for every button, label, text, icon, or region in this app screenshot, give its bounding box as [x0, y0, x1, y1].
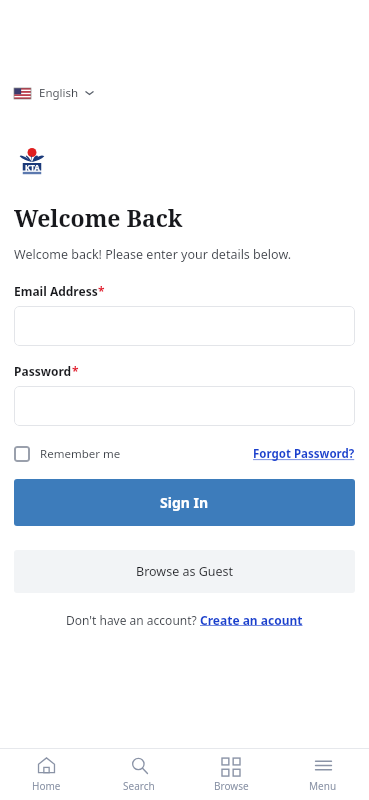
button[interactable]: Home: [0, 749, 93, 800]
staticText: Search: [123, 779, 155, 793]
button[interactable]: Browse as Guest: [14, 550, 355, 593]
button[interactable]: Create an acount: [200, 612, 303, 628]
button[interactable]: Forgot Password?: [253, 442, 355, 466]
button[interactable]: Search: [93, 749, 185, 800]
other: Browse: [222, 757, 240, 775]
button[interactable]: Remember me: [14, 442, 121, 466]
staticText: Welcome back! Please enter your details …: [14, 246, 292, 263]
button[interactable]: [14, 386, 355, 426]
staticText: Sign In: [160, 493, 209, 512]
button[interactable]: [14, 306, 355, 346]
staticText: Home: [32, 779, 61, 793]
staticText: *: [72, 363, 79, 379]
staticText: Password: [14, 363, 72, 379]
button[interactable]: English: [12, 82, 96, 104]
staticText: Menu: [309, 779, 337, 793]
other: Search: [130, 756, 149, 775]
staticText: Welcome Back: [14, 202, 183, 233]
other: Menu: [314, 756, 333, 775]
staticText: Browse: [214, 779, 249, 793]
staticText: Don't have an account?: [66, 612, 200, 628]
other: Home: [37, 756, 56, 775]
staticText: Remember me: [40, 446, 121, 462]
button[interactable]: Sign In: [14, 479, 355, 526]
button[interactable]: Browse: [185, 749, 277, 800]
staticText: Browse as Guest: [136, 563, 234, 580]
staticText: KTA: [25, 162, 40, 173]
button[interactable]: Menu: [277, 749, 369, 800]
staticText: *: [98, 283, 105, 299]
staticText: English: [39, 85, 79, 101]
staticText: Email Address: [14, 283, 98, 299]
